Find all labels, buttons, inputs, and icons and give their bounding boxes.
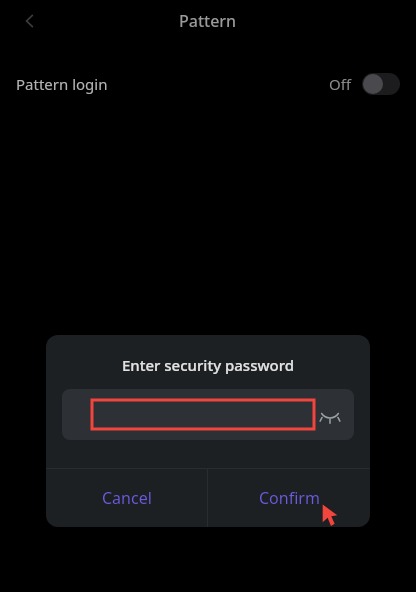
button[interactable]: Confirm: [208, 469, 370, 527]
button[interactable]: Pattern login toggle, Off: [362, 73, 400, 95]
staticText: Cancel: [102, 487, 152, 509]
staticText: Confirm: [259, 487, 320, 509]
button[interactable]: Show password: [62, 389, 354, 440]
staticText: Enter security password: [46, 355, 370, 375]
staticText: Pattern: [179, 10, 237, 32]
button[interactable]: Show password: [312, 397, 348, 433]
staticText: Off: [329, 74, 352, 94]
button[interactable]: Pattern login: [0, 62, 416, 106]
button[interactable]: Back: [8, 0, 52, 42]
staticText: Pattern login: [16, 74, 108, 94]
button[interactable]: Cancel: [46, 469, 207, 527]
